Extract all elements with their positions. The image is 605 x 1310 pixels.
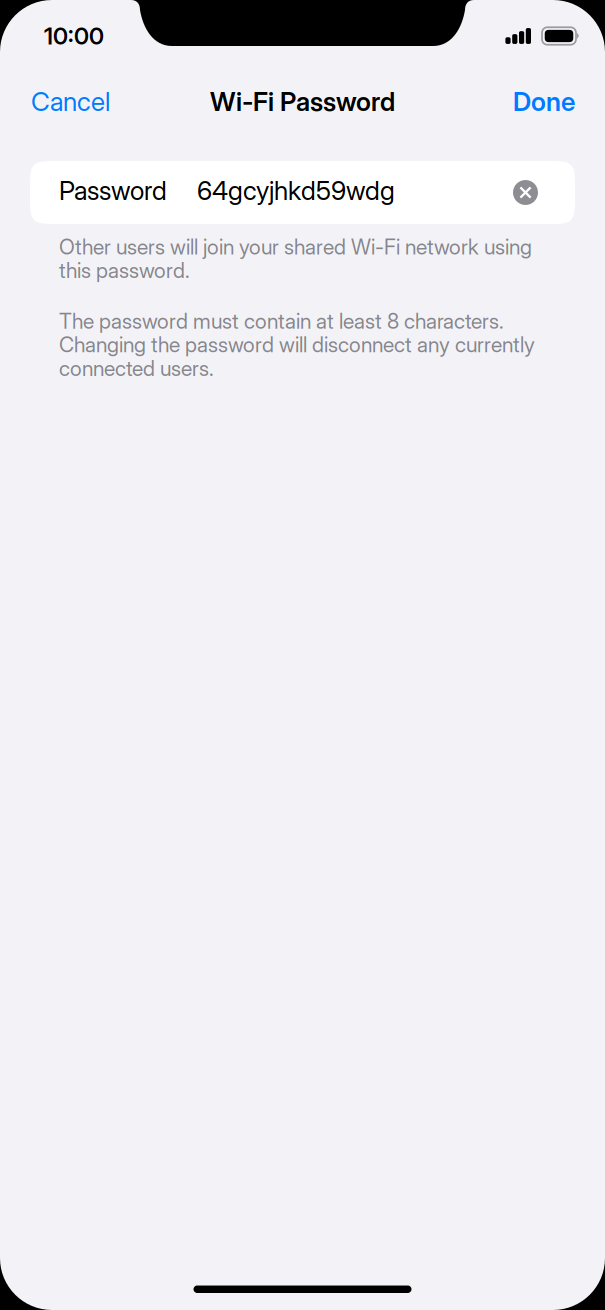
button[interactable]: Password	[30, 161, 575, 224]
staticText: 64gcyjhkd59wdg	[197, 175, 395, 206]
button[interactable]: Cancel	[31, 86, 110, 117]
button[interactable]: Done	[513, 86, 575, 117]
staticText: Wi-Fi Password	[210, 86, 395, 117]
staticText: The password must contain at least 8 cha…	[59, 309, 535, 380]
staticText: Other users will join your shared Wi-Fi …	[59, 235, 532, 282]
staticText: Cancel	[31, 86, 110, 117]
staticText: 10:00	[44, 22, 104, 50]
button[interactable]: Clear text	[513, 180, 538, 205]
staticText: Done	[513, 86, 575, 117]
staticText: Password	[59, 175, 167, 206]
